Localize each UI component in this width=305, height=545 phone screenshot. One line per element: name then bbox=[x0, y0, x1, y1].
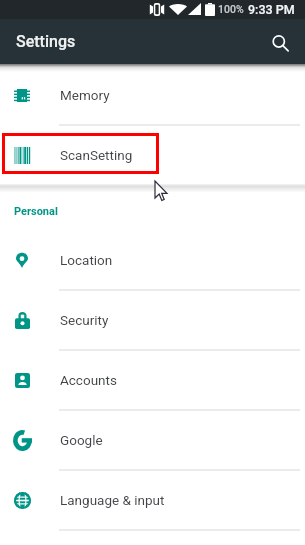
staticText: Personal bbox=[14, 205, 58, 218]
staticText: Security bbox=[60, 312, 109, 328]
staticText: Language & input bbox=[60, 492, 165, 508]
staticText: 100% bbox=[218, 3, 244, 15]
button[interactable]: Location bbox=[0, 230, 305, 290]
button[interactable]: Security bbox=[0, 290, 305, 350]
staticText: ScanSetting bbox=[60, 147, 133, 163]
button[interactable]: Language & input bbox=[0, 470, 305, 530]
staticText: Settings bbox=[16, 32, 76, 51]
staticText: 9:33 PM bbox=[248, 2, 295, 17]
staticText: Accounts bbox=[60, 372, 117, 388]
staticText: Location bbox=[60, 252, 113, 268]
button[interactable]: Search bbox=[261, 23, 299, 61]
button[interactable]: Google bbox=[0, 410, 305, 470]
staticText: Google bbox=[60, 432, 103, 448]
button[interactable]: Accounts bbox=[0, 350, 305, 410]
staticText: Memory bbox=[60, 87, 110, 103]
button[interactable]: Memory bbox=[0, 65, 305, 125]
button[interactable]: ScanSetting bbox=[0, 125, 305, 185]
